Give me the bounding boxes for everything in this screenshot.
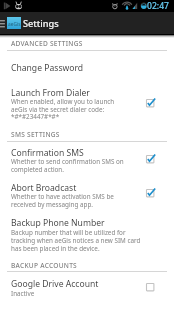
staticText: Whether to send confirmation SMS on	[11, 157, 124, 166]
staticText: SMS SETTINGS	[11, 130, 60, 139]
button[interactable]: Navigate up	[0, 12, 6, 34]
staticText: aeGis	[8, 21, 21, 28]
staticText: Launch From Dialer	[11, 87, 90, 99]
staticText: *#*#23447#*#*	[11, 112, 60, 121]
staticText: Confirmation SMS	[11, 147, 84, 159]
staticText: has been placed in the device.	[11, 244, 100, 253]
staticText: Backup number that will be utilized for	[11, 228, 126, 237]
staticText: received by messaging app.	[11, 200, 93, 209]
staticText: Google Drive Account	[11, 278, 99, 290]
staticText: Change Password	[11, 62, 84, 74]
staticText: completed action.	[11, 165, 64, 174]
button[interactable]	[0, 178, 174, 209]
staticText: Whether to have activation SMS be	[11, 192, 114, 201]
button[interactable]	[0, 145, 174, 176]
staticText: When enabled, allow you to launch	[11, 97, 115, 106]
button[interactable]: Enabled	[138, 94, 168, 114]
button[interactable]	[0, 84, 174, 122]
button[interactable]: Enabled	[138, 184, 168, 204]
staticText: Abort Broadcast	[11, 182, 77, 194]
staticText: ADVANCED SETTINGS	[11, 39, 83, 48]
button[interactable]	[0, 57, 174, 81]
button[interactable]	[0, 213, 174, 251]
staticText: BACKUP ACCOUNTS	[11, 261, 77, 270]
button[interactable]: Enabled	[138, 150, 168, 170]
staticText: Backup Phone Number	[11, 217, 105, 229]
staticText: tracking when aeGis notices a new SIM ca…	[11, 236, 141, 245]
staticText: aeGis via the secret dialer code:	[11, 105, 105, 114]
button[interactable]	[0, 275, 174, 307]
button[interactable]: Disabled	[138, 278, 168, 298]
staticText: Settings	[23, 17, 59, 30]
staticText: Inactive	[11, 289, 35, 298]
staticText: 02:47	[147, 0, 170, 12]
